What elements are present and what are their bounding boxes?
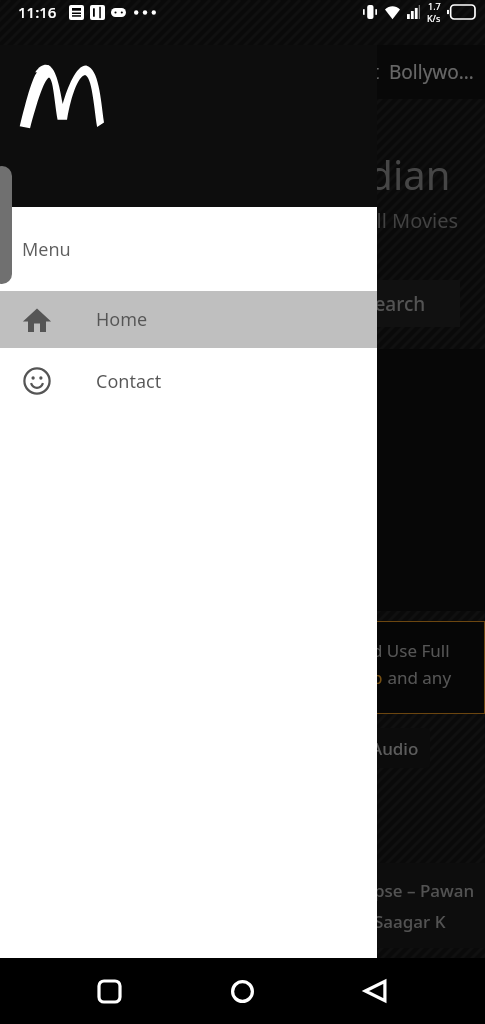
staticText: and any [383, 666, 452, 689]
staticText: Home [96, 307, 148, 332]
staticText: pse – Pawan [374, 879, 475, 902]
staticText: 1.7 [428, 0, 441, 12]
button[interactable]: Home [219, 968, 265, 1014]
staticText: Mastihut Bollywood... [300, 59, 485, 85]
staticText: Watch All Movies [300, 207, 459, 234]
staticText: Saagar K [374, 910, 446, 933]
staticText: Contact [96, 369, 162, 394]
staticText: Search [364, 291, 426, 317]
button[interactable]: Contact [0, 348, 377, 414]
staticText: d Use Full [372, 639, 450, 662]
staticText: 11:16 [18, 2, 57, 22]
staticText: p [372, 666, 383, 689]
staticText: Menu [22, 237, 71, 262]
staticText: K/s [427, 12, 441, 24]
other: Logo [18, 63, 104, 129]
staticText: Audio [371, 737, 419, 760]
staticText: Indian [330, 147, 451, 201]
button[interactable]: Back [352, 968, 398, 1014]
button[interactable]: Home [0, 291, 377, 348]
button[interactable]: Recent apps [86, 968, 132, 1014]
